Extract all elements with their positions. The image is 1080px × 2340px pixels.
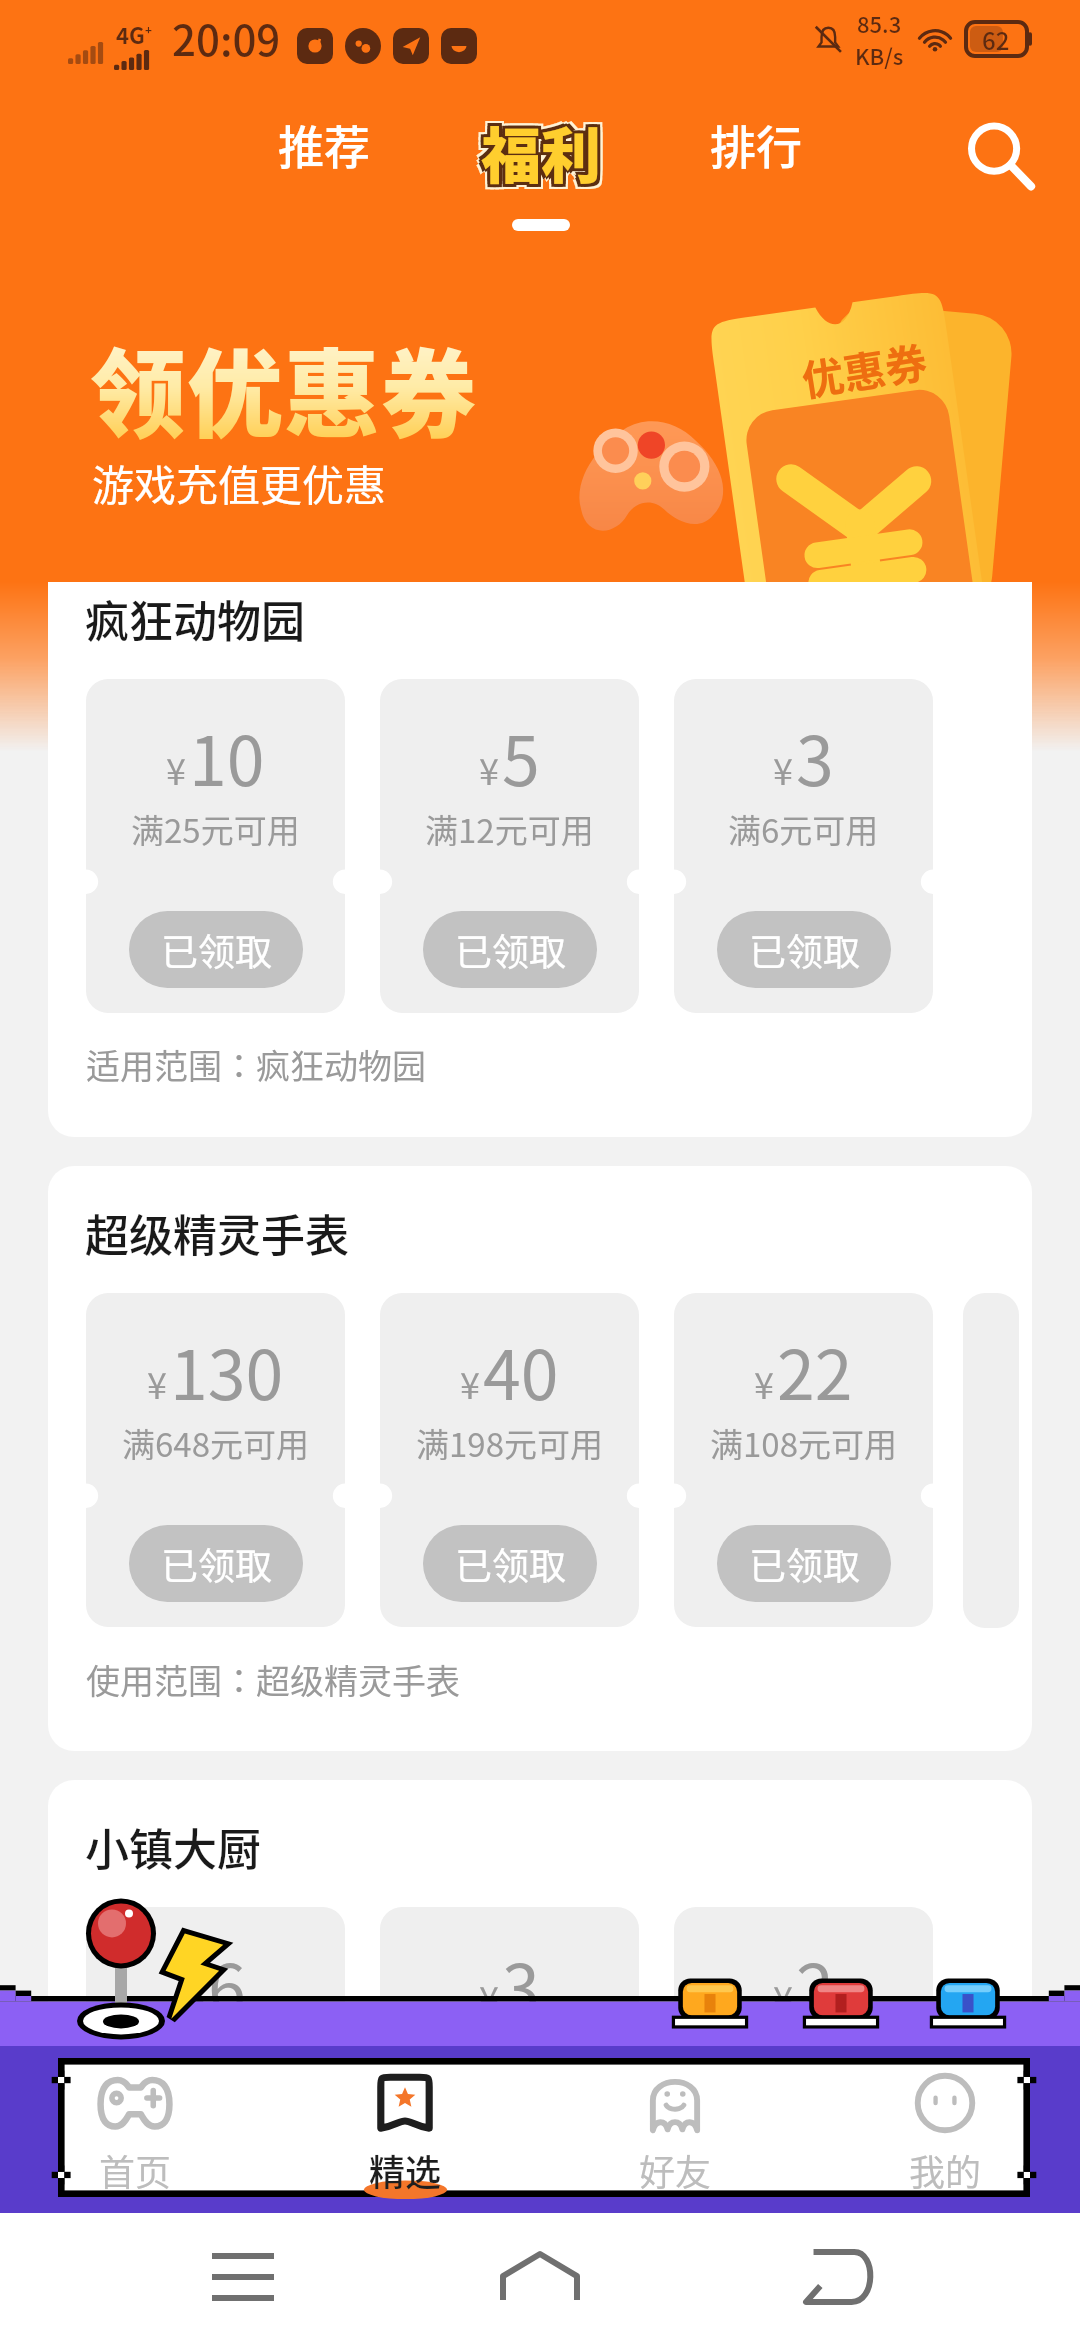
- staticText: 已领取: [749, 1537, 860, 1591]
- button[interactable]: ¥: [86, 1907, 345, 2241]
- staticText: 已领取: [455, 1537, 566, 1591]
- staticText: 好友: [639, 2144, 712, 2196]
- staticText: 福利: [486, 108, 606, 195]
- staticText: 满6元可用: [728, 805, 879, 853]
- button[interactable]: 已领取: [423, 2139, 597, 2216]
- staticText: 20:09: [172, 7, 281, 68]
- staticText: 福利: [476, 113, 596, 200]
- button[interactable]: 已领取: [129, 911, 303, 988]
- staticText: ¥: [479, 1971, 499, 2023]
- staticText: 已领取: [161, 2151, 272, 2205]
- button[interactable]: 疯狂动物园: [48, 552, 1032, 1137]
- staticText: 已领取: [455, 2151, 566, 2205]
- staticText: 精选: [369, 2144, 442, 2196]
- staticText: 2: [796, 1935, 834, 2033]
- button[interactable]: 已领取: [717, 1525, 891, 1602]
- staticText: 领优惠券: [90, 318, 478, 457]
- staticText: 我的: [909, 2144, 982, 2196]
- staticText: ¥: [147, 1357, 167, 1409]
- staticText: ¥: [479, 743, 499, 795]
- button[interactable]: Home: [485, 2222, 595, 2332]
- staticText: 福利: [486, 113, 606, 200]
- staticText: 85.3: [857, 7, 902, 39]
- button[interactable]: 已领取: [717, 2139, 891, 2216]
- staticText: 满198元可用: [416, 1419, 603, 1467]
- staticText: ¥: [754, 1357, 774, 1409]
- button[interactable]: Back: [783, 2222, 893, 2332]
- staticText: 福利: [484, 111, 604, 198]
- staticText: 适用范围：疯狂动物园: [86, 1040, 426, 1089]
- button[interactable]: Recents: [188, 2222, 298, 2332]
- staticText: 游戏充值更优惠: [92, 452, 387, 513]
- button[interactable]: ¥: [380, 1293, 639, 1627]
- staticText: ¥: [773, 743, 793, 795]
- button[interactable]: ¥: [380, 679, 639, 1013]
- button[interactable]: ¥: [380, 1907, 639, 2241]
- staticText: 优惠券: [797, 328, 932, 408]
- staticText: 福利: [478, 105, 598, 192]
- button[interactable]: 已领取: [129, 2139, 303, 2216]
- button[interactable]: Search: [952, 108, 1048, 204]
- staticText: 满25元可用: [131, 805, 300, 853]
- staticText: 福利: [478, 111, 598, 198]
- staticText: 22: [777, 1321, 853, 1419]
- button[interactable]: 好友: [540, 2058, 810, 2197]
- staticText: 推荐: [278, 111, 370, 178]
- staticText: KB/s: [855, 39, 904, 71]
- staticText: 62: [982, 22, 1010, 56]
- staticText: 3: [796, 707, 834, 805]
- staticText: 福利: [486, 103, 606, 190]
- button[interactable]: ¥: [674, 1293, 933, 1627]
- button[interactable]: 已领取: [423, 911, 597, 988]
- staticText: 3: [502, 1935, 540, 2033]
- staticText: 福利: [476, 108, 596, 195]
- button[interactable]: ¥: [86, 1293, 345, 1627]
- staticText: 福利: [484, 105, 604, 192]
- button[interactable]: 福利: [451, 106, 631, 196]
- staticText: ¥: [460, 1357, 480, 1409]
- staticText: 40: [483, 1321, 559, 1419]
- staticText: 已领取: [161, 1537, 272, 1591]
- staticText: 疯狂动物园: [85, 587, 305, 651]
- button[interactable]: 已领取: [423, 1525, 597, 1602]
- staticText: 4G⁺: [116, 18, 153, 50]
- staticText: 福利: [481, 113, 601, 200]
- staticText: 排行: [710, 111, 802, 178]
- button[interactable]: ¥: [86, 679, 345, 1013]
- staticText: 已领取: [749, 923, 860, 977]
- button[interactable]: 我的: [810, 2058, 1080, 2197]
- staticText: 满20元可用: [131, 2033, 300, 2081]
- staticText: 超级精灵手表: [85, 1201, 349, 1265]
- button[interactable]: 超级精灵手表: [48, 1166, 1032, 1751]
- staticText: 6: [208, 1935, 246, 2033]
- staticText: 已领取: [455, 923, 566, 977]
- staticText: 福利: [481, 105, 601, 192]
- staticText: 5: [502, 707, 540, 805]
- button[interactable]: 排行: [686, 108, 826, 180]
- staticText: 已领取: [749, 2151, 860, 2205]
- staticText: 福利: [481, 108, 601, 195]
- button[interactable]: 已领取: [717, 911, 891, 988]
- button[interactable]: ¥: [674, 679, 933, 1013]
- button[interactable]: 推荐: [254, 108, 394, 180]
- staticText: 130: [170, 1321, 284, 1419]
- button[interactable]: 已领取: [129, 1525, 303, 1602]
- button[interactable]: 首页: [0, 2058, 270, 2197]
- button[interactable]: 小镇大厨: [48, 1780, 1032, 2340]
- staticText: 已领取: [161, 923, 272, 977]
- staticText: 满10元可用: [425, 2033, 594, 2081]
- staticText: ¥: [773, 1971, 793, 2023]
- staticText: ¥: [185, 1971, 205, 2023]
- staticText: 满6元可用: [728, 2033, 879, 2081]
- staticText: ¥: [166, 743, 186, 795]
- staticText: 福利: [481, 111, 601, 198]
- staticText: 使用范围：超级精灵手表: [86, 1655, 460, 1704]
- staticText: 福利: [484, 108, 604, 195]
- button[interactable]: ¥: [674, 1907, 933, 2241]
- staticText: 福利: [476, 103, 596, 190]
- staticText: 小镇大厨: [85, 1815, 261, 1879]
- staticText: 满648元可用: [122, 1419, 309, 1467]
- staticText: 首页: [99, 2144, 172, 2196]
- button[interactable]: 精选: [270, 2058, 540, 2197]
- staticText: 10: [189, 707, 265, 805]
